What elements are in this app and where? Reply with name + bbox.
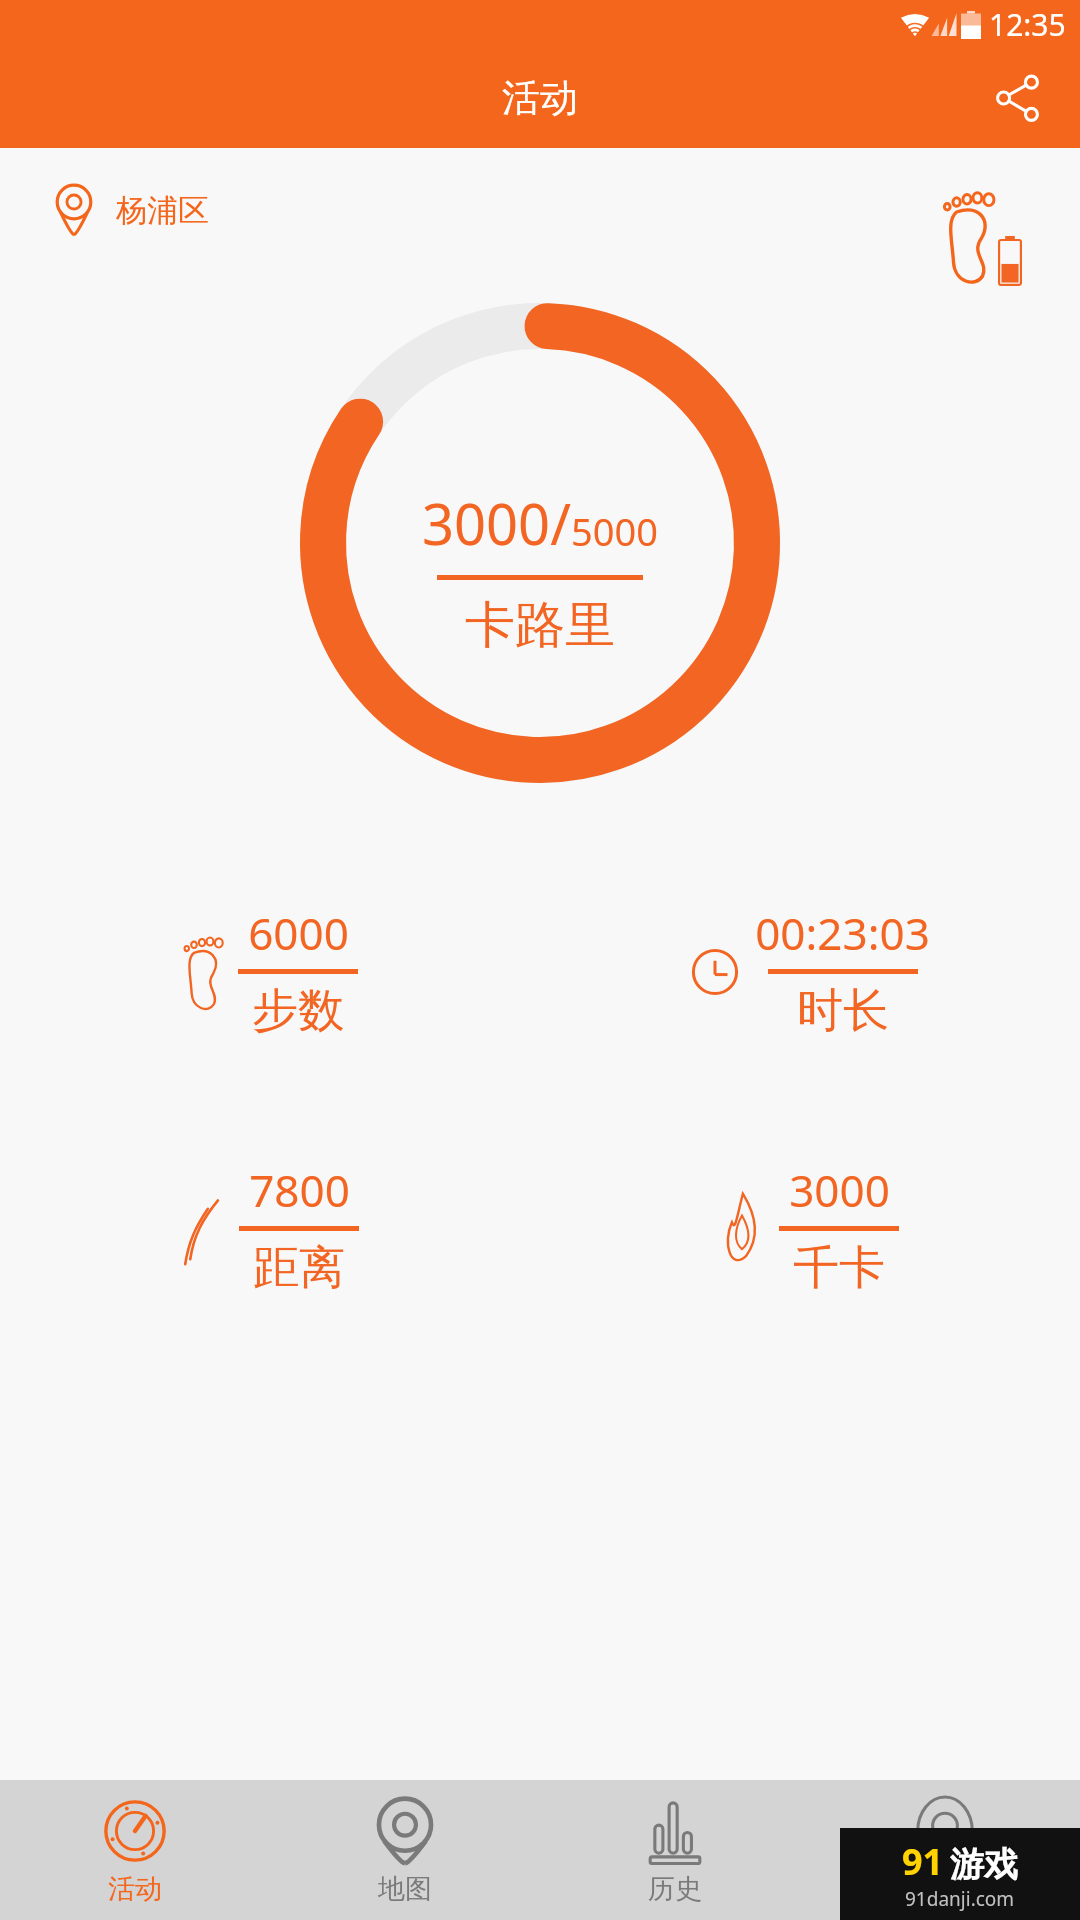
- button[interactable]: 地图: [270, 1780, 540, 1920]
- button[interactable]: 杨浦区: [54, 182, 209, 238]
- button[interactable]: 历史: [540, 1780, 810, 1920]
- staticText: 卡路里: [465, 594, 615, 657]
- staticText: 3000/: [422, 485, 571, 561]
- button[interactable]: Share: [980, 60, 1056, 136]
- staticText: 活动: [502, 74, 578, 122]
- staticText: 我的: [918, 1872, 972, 1906]
- button[interactable]: 我的: [810, 1780, 1080, 1920]
- staticText: 距离: [253, 1239, 345, 1297]
- button[interactable]: 3000/: [300, 303, 780, 783]
- button[interactable]: 6000: [0, 903, 540, 1040]
- staticText: 历史: [648, 1872, 702, 1906]
- staticText: 00:23:03: [755, 903, 930, 963]
- button[interactable]: 00:23:03: [540, 903, 1080, 1040]
- button[interactable]: Pedometer battery: [941, 186, 1022, 286]
- staticText: 步数: [252, 982, 344, 1040]
- staticText: 91: [902, 1837, 944, 1886]
- staticText: 游戏: [950, 1843, 1018, 1886]
- staticText: 6000: [248, 903, 349, 963]
- staticText: 5000: [571, 505, 658, 557]
- staticText: 时长: [797, 982, 889, 1040]
- staticText: 91danji.com: [905, 1886, 1015, 1912]
- button[interactable]: 7800: [0, 1160, 540, 1297]
- button[interactable]: 3000: [540, 1160, 1080, 1297]
- staticText: 地图: [378, 1872, 432, 1906]
- staticText: 千卡: [793, 1239, 885, 1297]
- staticText: 12:35: [989, 4, 1066, 45]
- staticText: 杨浦区: [116, 191, 209, 230]
- staticText: 活动: [108, 1872, 162, 1906]
- staticText: 3000: [789, 1160, 890, 1220]
- button[interactable]: 活动: [0, 1780, 270, 1920]
- staticText: 7800: [249, 1160, 350, 1220]
